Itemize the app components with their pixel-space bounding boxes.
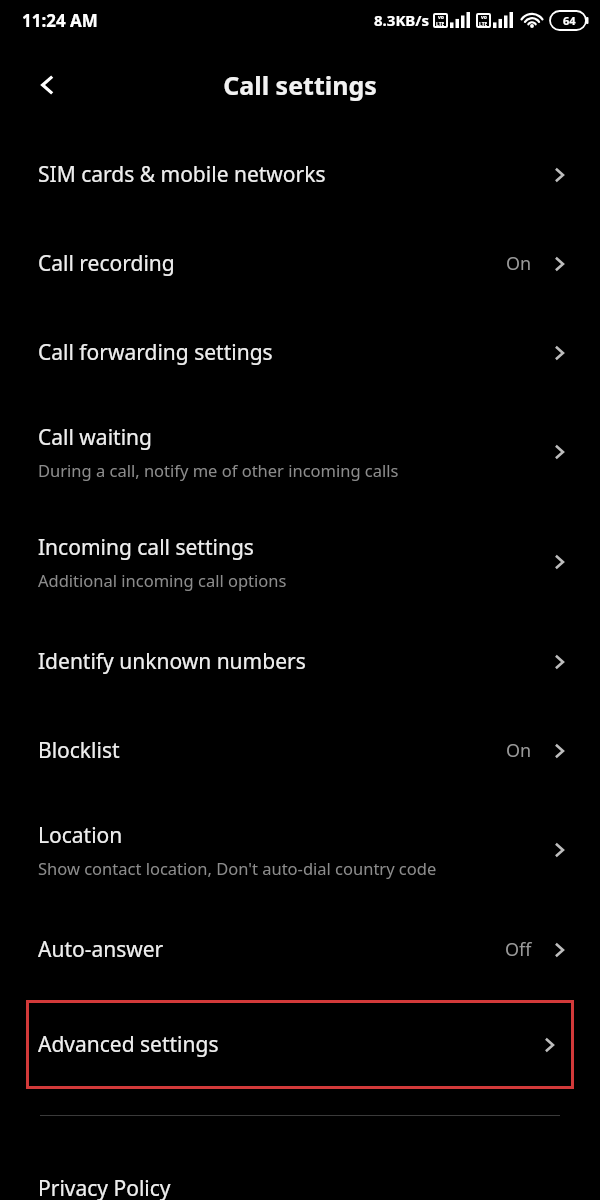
staticText: vo bbox=[481, 14, 487, 21]
staticText: Blocklist bbox=[38, 736, 120, 765]
staticText: Call waiting bbox=[38, 423, 152, 452]
staticText: Privacy Policy bbox=[38, 1174, 171, 1200]
button[interactable]: Call recording bbox=[0, 219, 600, 308]
staticText: Call settings bbox=[223, 68, 377, 102]
button[interactable]: Call forwarding settings bbox=[0, 308, 600, 397]
button[interactable]: Privacy Policy bbox=[0, 1174, 600, 1200]
staticText: Identify unknown numbers bbox=[38, 647, 306, 676]
button[interactable]: SIM cards & mobile networks bbox=[0, 130, 600, 219]
staticText: LTE bbox=[436, 21, 445, 28]
button[interactable]: Back bbox=[22, 59, 74, 111]
staticText: 11:24 AM bbox=[22, 9, 98, 32]
staticText: vo bbox=[438, 14, 444, 21]
staticText: 64 bbox=[563, 13, 576, 28]
staticText: 8.3KB/s bbox=[374, 10, 430, 30]
staticText: Auto-answer bbox=[38, 935, 164, 964]
button[interactable]: Auto-answer bbox=[0, 905, 600, 994]
staticText: Off bbox=[505, 937, 532, 962]
button[interactable]: Blocklist bbox=[0, 706, 600, 795]
staticText: On bbox=[506, 251, 532, 276]
staticText: Call recording bbox=[38, 249, 175, 278]
button[interactable]: Incoming call settings bbox=[0, 507, 600, 617]
button[interactable]: Identify unknown numbers bbox=[0, 617, 600, 706]
button[interactable]: Call waiting bbox=[0, 397, 600, 507]
staticText: Location bbox=[38, 821, 123, 850]
button[interactable]: Advanced settings bbox=[26, 1000, 574, 1089]
staticText: During a call, notify me of other incomi… bbox=[38, 459, 399, 481]
staticText: Show contact location, Don't auto-dial c… bbox=[38, 857, 437, 879]
staticText: Advanced settings bbox=[38, 1030, 219, 1059]
staticText: Additional incoming call options bbox=[38, 569, 287, 591]
button[interactable]: Location bbox=[0, 795, 600, 905]
staticText: Incoming call settings bbox=[38, 533, 254, 562]
staticText: On bbox=[506, 738, 532, 763]
staticText: LTE bbox=[479, 21, 488, 28]
staticText: Call forwarding settings bbox=[38, 338, 273, 367]
staticText: SIM cards & mobile networks bbox=[38, 160, 326, 189]
